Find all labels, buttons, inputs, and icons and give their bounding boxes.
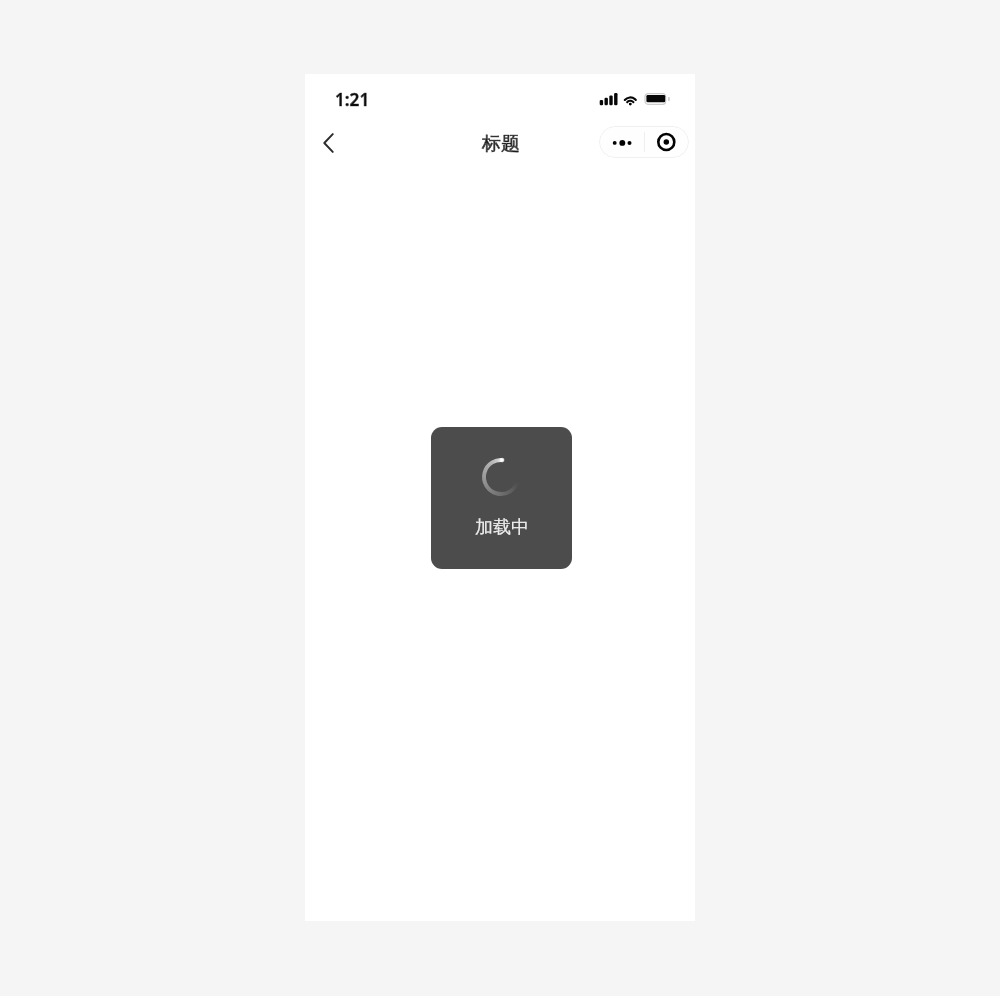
button[interactable]: Close mini program xyxy=(644,126,689,158)
other: Loading xyxy=(431,427,572,569)
button[interactable]: Back xyxy=(308,121,348,165)
staticText: 标题 xyxy=(482,132,520,156)
staticText: 加载中 xyxy=(475,516,529,539)
staticText: 1:21 xyxy=(335,88,370,111)
staticText: 1:21 xyxy=(335,88,370,111)
staticText: 标题 xyxy=(482,132,520,156)
button[interactable]: More options xyxy=(599,126,644,158)
